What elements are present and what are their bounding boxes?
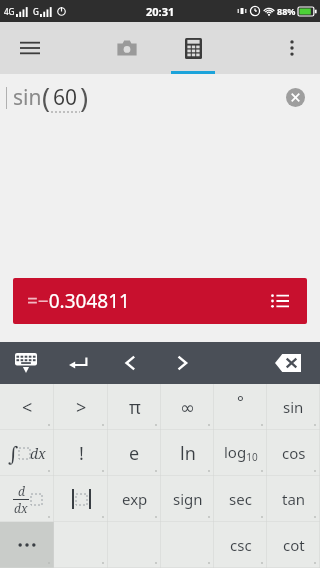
staticText: csc — [230, 535, 252, 555]
button[interactable]: ° — [214, 384, 267, 430]
staticText: ) — [80, 79, 89, 116]
staticText: cot — [283, 535, 305, 555]
staticText: cos — [282, 443, 306, 463]
button[interactable]: Move left — [104, 342, 156, 384]
button[interactable]: ln — [161, 430, 214, 476]
button[interactable]: > — [54, 384, 108, 430]
button[interactable]: csc — [214, 522, 267, 568]
button[interactable]: ! — [54, 430, 108, 476]
staticText: ∫ — [8, 442, 19, 465]
button[interactable]: cot — [267, 522, 320, 568]
other: History — [265, 286, 295, 316]
staticText: =−0.304811 — [27, 288, 130, 314]
button[interactable]: Camera — [99, 22, 155, 74]
staticText: 4G — [4, 6, 15, 17]
button[interactable]: tan — [267, 476, 320, 522]
button[interactable]: cos — [267, 430, 320, 476]
staticText: > — [76, 395, 87, 420]
button[interactable]: Backspace — [268, 342, 308, 384]
button[interactable]: sign — [161, 476, 214, 522]
staticText: < — [22, 395, 33, 420]
staticText: 60 — [53, 83, 78, 112]
staticText: sign — [173, 489, 203, 509]
staticText: ( — [42, 79, 51, 116]
button[interactable]: Hide keyboard — [0, 342, 52, 384]
button[interactable]: sin — [267, 384, 320, 430]
staticText: sin — [283, 397, 304, 417]
staticText: 88% — [277, 5, 296, 17]
button[interactable]: Menu — [8, 26, 52, 70]
button[interactable]: =−0.304811 — [13, 278, 307, 324]
button[interactable]: e — [108, 430, 161, 476]
button[interactable]: Clear — [280, 82, 310, 112]
staticText: dx — [30, 444, 46, 463]
button[interactable]: ∫ — [0, 430, 54, 476]
button[interactable] — [54, 476, 108, 522]
button[interactable]: < — [0, 384, 54, 430]
button[interactable]: exp — [108, 476, 161, 522]
button[interactable]: ∞ — [161, 384, 214, 430]
button[interactable]: Enter — [52, 342, 104, 384]
button[interactable]: log10 — [214, 430, 267, 476]
staticText: log10 — [224, 442, 258, 464]
staticText: e — [129, 441, 140, 466]
staticText: exp — [122, 489, 148, 509]
button[interactable]: d — [0, 476, 54, 522]
staticText: sec — [229, 489, 252, 509]
staticText: tan — [282, 489, 306, 509]
staticText: ° — [237, 391, 244, 413]
button[interactable] — [0, 522, 54, 568]
staticText: dx — [14, 500, 28, 516]
button[interactable]: Move right — [156, 342, 208, 384]
button[interactable]: More options — [272, 28, 312, 68]
staticText: 20:31 — [146, 4, 175, 19]
button[interactable]: sec — [214, 476, 267, 522]
staticText: G — [33, 6, 39, 17]
staticText: ∞ — [180, 397, 195, 418]
button[interactable]: π — [108, 384, 161, 430]
staticText: sin — [13, 83, 42, 112]
staticText: ln — [180, 441, 196, 466]
staticText: π — [129, 395, 141, 420]
staticText: ! — [79, 441, 84, 466]
button[interactable]: Calculator — [165, 22, 221, 74]
staticText: d — [18, 483, 25, 499]
